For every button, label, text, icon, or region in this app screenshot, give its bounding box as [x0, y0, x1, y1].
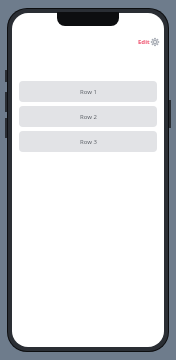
- staticText: Edit: [138, 38, 150, 46]
- button[interactable]: Edit: [136, 37, 161, 47]
- button[interactable]: Row 1: [19, 81, 157, 102]
- staticText: Row 2: [80, 113, 97, 121]
- button[interactable]: Row 3: [19, 131, 157, 152]
- staticText: Row 3: [80, 138, 97, 146]
- staticText: Row 1: [80, 88, 97, 96]
- button[interactable]: Row 2: [19, 106, 157, 127]
